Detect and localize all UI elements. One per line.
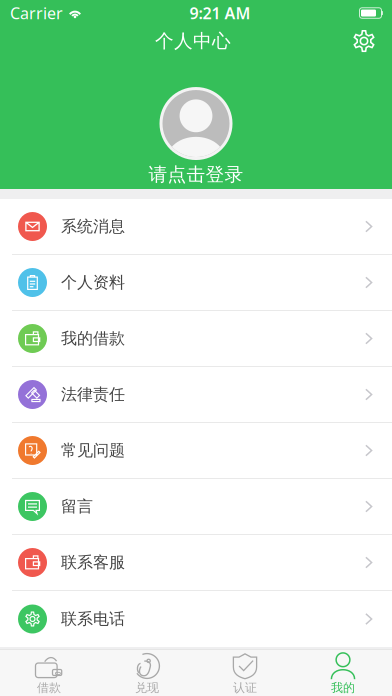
button[interactable]: Settings [342, 19, 386, 63]
staticText: 请点击登录 [148, 163, 243, 186]
staticText: 留言 [61, 497, 93, 516]
button[interactable]: 系统消息 [0, 199, 392, 255]
staticText: 借款 [37, 680, 61, 695]
button[interactable]: 请点击登录 [0, 59, 392, 186]
button[interactable]: 法律责任 [0, 367, 392, 423]
staticText: 个人中心 [155, 30, 231, 52]
button[interactable]: 兑现 [98, 649, 196, 696]
button[interactable]: 认证 [196, 649, 294, 696]
staticText: 系统消息 [61, 217, 125, 236]
staticText: 个人资料 [61, 273, 125, 292]
staticText: 我的借款 [61, 329, 125, 348]
button[interactable]: 我的借款 [0, 311, 392, 367]
staticText: 兑现 [135, 680, 159, 695]
staticText: 认证 [233, 680, 257, 695]
button[interactable]: 联系客服 [0, 535, 392, 591]
button[interactable]: 个人资料 [0, 255, 392, 311]
staticText: 法律责任 [61, 385, 125, 404]
staticText: 联系电话 [61, 609, 125, 629]
button[interactable]: 借款 [0, 649, 98, 696]
staticText: 我的 [331, 680, 355, 695]
staticText: 联系客服 [61, 553, 125, 572]
staticText: Carrier [10, 2, 63, 24]
button[interactable]: 留言 [0, 479, 392, 535]
button[interactable]: 联系电话 [0, 591, 392, 647]
button[interactable]: 我的 [294, 649, 392, 696]
staticText: 9:21 AM [189, 2, 250, 24]
staticText: 常见问题 [61, 441, 125, 460]
button[interactable]: 常见问题 [0, 423, 392, 479]
